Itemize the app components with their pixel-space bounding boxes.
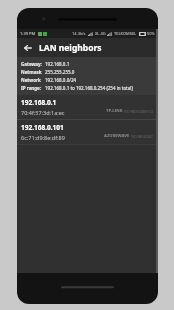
staticText: 6c:71:d9:8e:df:89 xyxy=(21,134,65,141)
staticText: 1:39 PM xyxy=(20,31,36,36)
staticText: XL 4G xyxy=(95,31,106,36)
staticText: 70:4f:57:3d:1a:ec xyxy=(21,109,65,116)
button[interactable]: 192.168.0.101 xyxy=(17,120,158,144)
staticText: Gateway: xyxy=(21,61,42,67)
staticText: Network: xyxy=(21,77,42,83)
staticText: 192.168.0.1 xyxy=(45,61,70,67)
staticText: 50% xyxy=(147,31,155,36)
staticText: 14.3k/s xyxy=(72,31,86,36)
staticText: Netmask: xyxy=(21,69,42,75)
button[interactable]: 192.168.0.1 xyxy=(17,95,158,119)
staticText: 192.168.0.1 xyxy=(21,98,57,107)
staticText: 192.168.0.101 xyxy=(21,123,64,132)
staticText: TELKOMSEL xyxy=(114,31,137,36)
staticText: TP-LINK xyxy=(106,108,123,114)
staticText: 192.168.0.0/24 xyxy=(45,77,77,83)
staticText: TECHNOLOGIES CO. xyxy=(123,110,154,114)
staticText: 255.255.255.0 xyxy=(45,69,75,75)
staticText: AZUREWAVE xyxy=(104,133,130,139)
staticText: IP range: xyxy=(21,85,42,91)
staticText: 192.168.0.1 to 192.168.0.254 (254 in tot… xyxy=(45,85,133,91)
staticText: TECHNOLOGIC xyxy=(130,135,154,139)
button[interactable]: Back xyxy=(21,41,34,54)
staticText: LAN neighbors xyxy=(39,42,102,54)
